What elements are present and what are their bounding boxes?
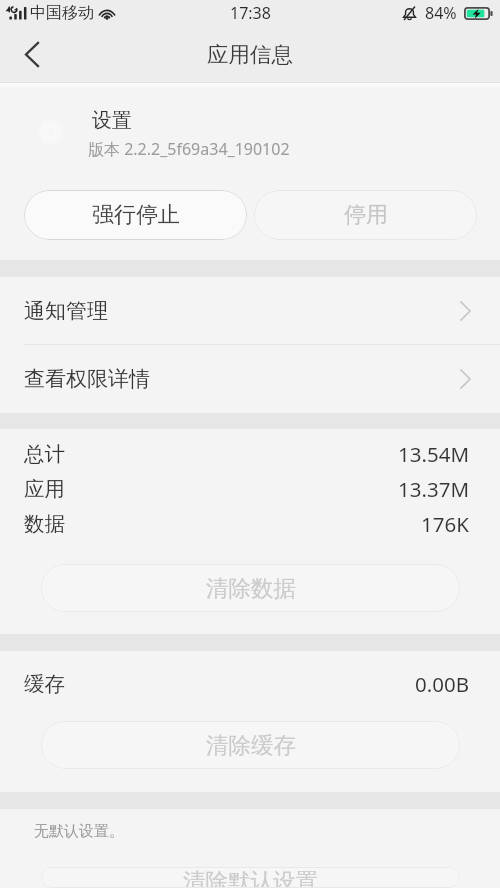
staticText: 设置 <box>92 108 132 133</box>
staticText: 84% <box>425 2 457 24</box>
staticText: 13.37M <box>398 475 469 503</box>
staticText: 17:38 <box>230 2 271 24</box>
button[interactable]: 通知管理 <box>0 277 500 344</box>
staticText: 中国移动 <box>30 3 94 23</box>
button[interactable]: 强行停止 <box>24 190 247 240</box>
staticText: 0.00B <box>415 670 469 698</box>
staticText: 应用 <box>24 476 65 502</box>
button[interactable]: Back <box>0 30 63 83</box>
staticText: 无默认设置。 <box>34 822 124 841</box>
button[interactable]: 查看权限详情 <box>0 345 500 413</box>
staticText: 数据 <box>24 511 65 537</box>
button[interactable]: 清除默认设置 <box>41 867 460 888</box>
staticText: 应用信息 <box>207 41 293 68</box>
staticText: 缓存 <box>24 671 65 697</box>
button[interactable]: 停用 <box>254 190 477 240</box>
staticText: 176K <box>421 510 469 538</box>
staticText: 版本 2.2.2_5f69a34_190102 <box>88 138 290 160</box>
button[interactable]: 清除数据 <box>41 564 460 612</box>
button[interactable]: 清除缓存 <box>41 721 460 769</box>
staticText: 13.54M <box>398 440 469 468</box>
staticText: 通知管理 <box>24 298 108 324</box>
staticText: 清除数据 <box>206 574 296 602</box>
staticText: 强行停止 <box>92 201 180 229</box>
staticText: 清除缓存 <box>206 731 296 759</box>
staticText: 查看权限详情 <box>24 366 150 392</box>
staticText: 清除默认设置 <box>183 867 318 888</box>
staticText: 总计 <box>24 441 65 467</box>
staticText: 停用 <box>344 201 388 229</box>
